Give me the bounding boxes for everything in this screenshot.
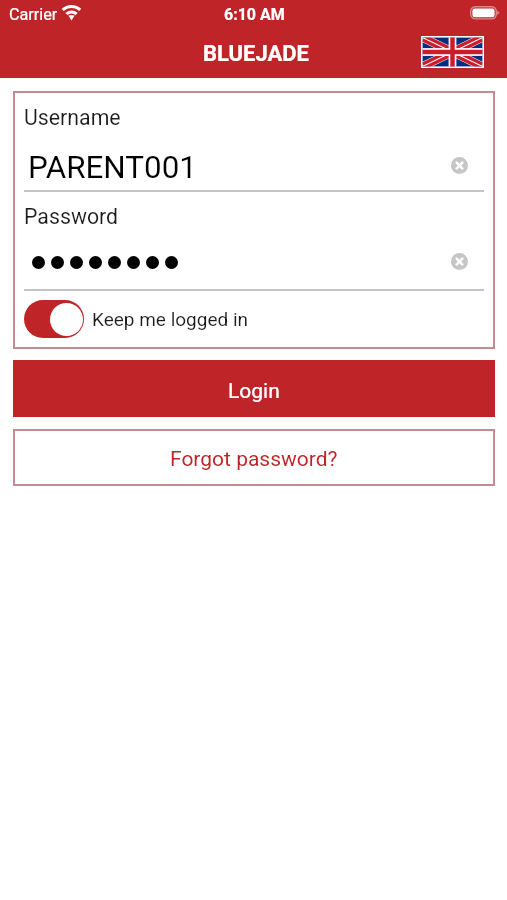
button[interactable]: Keep me logged in toggle	[24, 300, 84, 338]
staticText: Forgot password?	[170, 447, 338, 472]
staticText: Carrier	[9, 5, 58, 24]
staticText: Keep me logged in	[92, 308, 249, 330]
button[interactable]: Clear username	[451, 157, 468, 174]
button[interactable]: Change language	[421, 36, 484, 68]
staticText: BLUEJADE	[203, 41, 309, 67]
staticText: 6:10 AM	[224, 5, 285, 24]
staticText: Password	[24, 204, 119, 229]
button[interactable]: PARENT001	[24, 143, 444, 191]
button[interactable]: Login	[13, 360, 495, 417]
button[interactable]: Forgot password?	[13, 429, 495, 486]
staticText: Username	[24, 105, 121, 130]
button[interactable]: Password	[24, 242, 444, 290]
staticText: Login	[228, 379, 280, 404]
staticText: PARENT001	[28, 149, 197, 186]
button[interactable]: Clear password	[451, 253, 468, 270]
